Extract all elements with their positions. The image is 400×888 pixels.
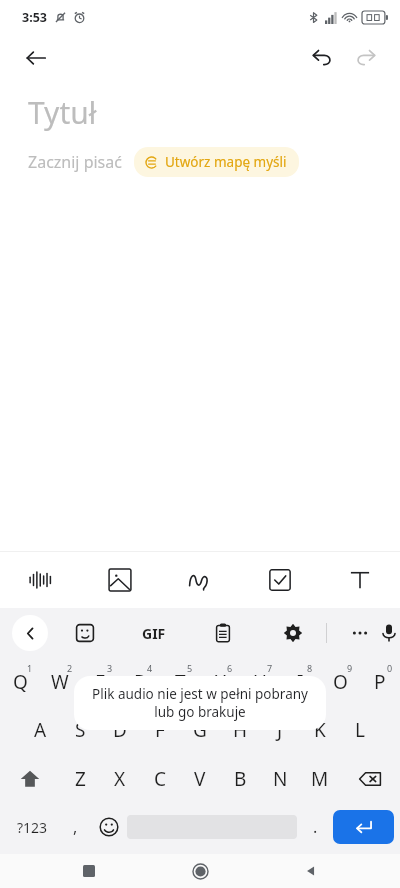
staticText: J xyxy=(277,717,283,743)
staticText: , xyxy=(73,816,78,838)
staticText: 7 xyxy=(267,662,273,674)
staticText: 4 xyxy=(147,662,153,674)
button[interactable]: E xyxy=(80,658,120,706)
button[interactable]: G xyxy=(180,706,220,754)
staticText: D xyxy=(113,717,127,743)
staticText: W xyxy=(51,669,69,695)
button[interactable]: L xyxy=(340,706,380,754)
button[interactable]: D xyxy=(100,706,140,754)
staticText: E xyxy=(95,669,106,695)
staticText: R xyxy=(134,669,146,695)
button[interactable]: Draw xyxy=(160,552,240,608)
staticText: GIF xyxy=(142,624,166,643)
staticText: A xyxy=(34,717,47,743)
staticText: 0 xyxy=(387,662,393,674)
button[interactable]: GIF xyxy=(138,620,170,647)
staticText: 3:53 xyxy=(22,9,47,26)
staticText: 2 xyxy=(67,662,73,674)
button[interactable]: Back xyxy=(14,36,58,80)
button[interactable]: Audio xyxy=(0,552,80,608)
button[interactable]: K xyxy=(300,706,340,754)
button[interactable]: M xyxy=(300,754,340,804)
staticText: 6 xyxy=(227,662,233,674)
button[interactable]: Shift xyxy=(0,754,60,804)
staticText: G xyxy=(193,717,207,743)
button[interactable]: Z xyxy=(60,754,100,804)
button[interactable]: Recents xyxy=(67,854,111,888)
button[interactable]: R xyxy=(120,658,160,706)
button[interactable]: Stickers xyxy=(68,616,102,650)
button[interactable]: Q xyxy=(0,658,40,706)
staticText: C xyxy=(154,766,167,792)
staticText: 1 xyxy=(27,662,33,674)
button[interactable]: Undo xyxy=(300,36,344,80)
button[interactable]: W xyxy=(40,658,80,706)
button[interactable]: C xyxy=(140,754,180,804)
staticText: 5 xyxy=(187,662,193,674)
button[interactable]: Enter xyxy=(333,810,394,844)
button[interactable]: T xyxy=(160,658,200,706)
button[interactable]: Emoji xyxy=(91,804,127,850)
button[interactable]: More xyxy=(343,616,377,650)
button[interactable]: A xyxy=(20,706,60,754)
staticText: 3 xyxy=(107,662,113,674)
staticText: . xyxy=(313,816,318,838)
staticText: U xyxy=(253,669,267,695)
button[interactable]: P xyxy=(360,658,400,706)
staticText: S xyxy=(75,717,86,743)
button[interactable]: Backspace xyxy=(340,754,400,804)
staticText: M xyxy=(311,766,329,792)
staticText: Q xyxy=(13,669,28,695)
staticText: 9 xyxy=(347,662,353,674)
button[interactable]: O xyxy=(320,658,360,706)
staticText: N xyxy=(273,766,288,792)
staticText: O xyxy=(333,669,348,695)
staticText: B xyxy=(234,766,247,792)
button[interactable]: . xyxy=(297,804,333,850)
button[interactable]: B xyxy=(220,754,260,804)
staticText: P xyxy=(374,669,386,695)
staticText: K xyxy=(314,717,326,743)
button[interactable]: V xyxy=(180,754,220,804)
staticText: I xyxy=(297,669,304,695)
button[interactable]: , xyxy=(59,804,91,850)
staticText: Z xyxy=(75,766,86,792)
staticText: 8 xyxy=(307,662,313,674)
staticText: Y xyxy=(215,669,226,695)
button[interactable]: Utwórz mapę myśli xyxy=(134,147,299,177)
button[interactable]: H xyxy=(220,706,260,754)
button[interactable]: ?123 xyxy=(6,804,59,850)
button[interactable]: Voice input xyxy=(377,616,400,650)
button[interactable]: U xyxy=(240,658,280,706)
staticText: H xyxy=(233,717,248,743)
button[interactable]: N xyxy=(260,754,300,804)
button[interactable]: Settings xyxy=(276,616,310,650)
button[interactable]: Redo xyxy=(344,36,388,80)
button[interactable]: Text xyxy=(320,552,400,608)
staticText: X xyxy=(114,766,126,792)
staticText: Plik audio nie jest w pełni pobrany lub … xyxy=(92,685,308,721)
staticText: F xyxy=(155,717,165,743)
button[interactable]: J xyxy=(260,706,300,754)
button[interactable]: Y xyxy=(200,658,240,706)
button[interactable]: Expand xyxy=(12,615,48,651)
staticText: ?123 xyxy=(17,818,48,837)
button[interactable]: Clipboard xyxy=(206,616,240,650)
button[interactable]: X xyxy=(100,754,140,804)
staticText: Utwórz mapę myśli xyxy=(165,153,287,171)
button[interactable]: Home xyxy=(178,854,222,888)
button[interactable]: I xyxy=(280,658,320,706)
button[interactable]: Back xyxy=(289,854,333,888)
staticText: V xyxy=(194,766,206,792)
staticText: T xyxy=(175,669,186,695)
staticText: Zacznij pisać xyxy=(28,151,122,173)
button[interactable]: S xyxy=(60,706,100,754)
button[interactable]: Image xyxy=(80,552,160,608)
staticText: L xyxy=(355,717,365,743)
button[interactable]: Checklist xyxy=(240,552,320,608)
button[interactable]: F xyxy=(140,706,180,754)
staticText: Tytuł xyxy=(28,92,97,133)
